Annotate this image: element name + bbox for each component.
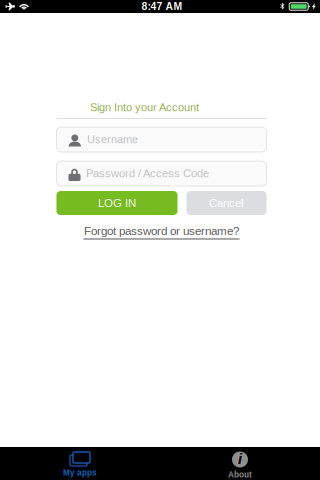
staticText: Username: [87, 133, 138, 146]
staticText: Sign Into your Account: [90, 101, 199, 114]
staticText: Password / Access Code: [86, 167, 209, 180]
button[interactable]: LOG IN: [56, 191, 177, 215]
staticText: Forgot password or username?: [84, 224, 239, 237]
button[interactable]: Cancel: [186, 191, 266, 215]
staticText: i: [238, 451, 242, 467]
button[interactable]: i: [160, 447, 320, 480]
staticText: Cancel: [209, 197, 244, 209]
staticText: My apps: [63, 468, 97, 477]
staticText: About: [228, 470, 252, 479]
staticText: LOG IN: [98, 197, 136, 209]
button[interactable]: My apps: [0, 447, 160, 480]
staticText: 8:47 AM: [141, 1, 182, 12]
button[interactable]: Forgot password or username?: [56, 225, 266, 239]
